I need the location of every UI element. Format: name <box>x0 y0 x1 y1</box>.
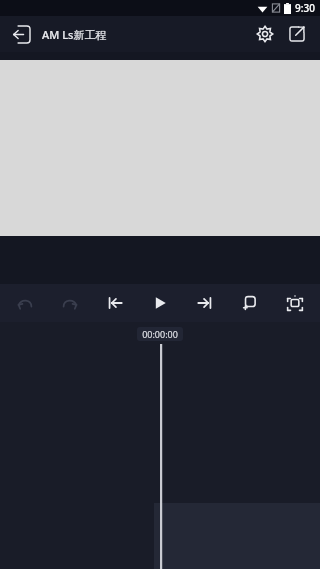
button[interactable]: Skip to end <box>186 284 224 322</box>
button[interactable]: Redo <box>51 284 89 322</box>
button[interactable]: Export <box>282 19 312 49</box>
button[interactable]: Crop <box>276 284 314 322</box>
button[interactable]: Back <box>8 21 34 47</box>
button[interactable]: Settings <box>250 19 280 49</box>
staticText: 9:30 <box>295 1 315 15</box>
button[interactable]: Add loop <box>231 284 269 322</box>
button[interactable]: Skip to start <box>96 284 134 322</box>
staticText: AM Ls新工程 <box>42 27 107 42</box>
button[interactable]: Undo <box>6 284 44 322</box>
staticText: 00:00:00 <box>142 328 178 340</box>
button[interactable]: Play <box>141 284 179 322</box>
